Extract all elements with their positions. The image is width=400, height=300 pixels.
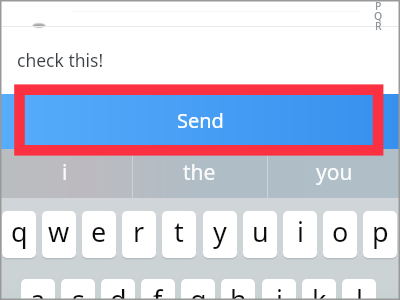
staticText: w	[48, 213, 70, 250]
staticText: a	[30, 281, 46, 300]
button[interactable]: o	[323, 211, 357, 258]
staticText: y	[213, 213, 227, 250]
staticText: t	[174, 213, 184, 250]
button[interactable]: u	[243, 211, 277, 258]
staticText: i	[62, 158, 68, 187]
button[interactable]: h	[221, 279, 255, 300]
button[interactable]: j	[262, 279, 296, 300]
button[interactable]: e	[82, 211, 116, 258]
staticText: f	[153, 281, 163, 300]
button[interactable]: Alphabet index	[371, 0, 386, 31]
staticText: i	[297, 213, 304, 250]
staticText: you	[316, 158, 353, 187]
button[interactable]: w	[42, 211, 76, 258]
staticText: check this!	[17, 48, 104, 72]
staticText: h	[230, 281, 247, 300]
staticText: d	[110, 281, 127, 300]
button[interactable]: y	[203, 211, 237, 258]
staticText: l	[356, 281, 363, 300]
staticText: r	[133, 213, 145, 250]
button[interactable]: r	[122, 211, 156, 258]
button[interactable]: a	[21, 279, 55, 300]
button[interactable]: the	[133, 149, 266, 198]
staticText: p	[372, 213, 389, 250]
button[interactable]: i	[0, 149, 129, 198]
button[interactable]: s	[61, 279, 95, 300]
button[interactable]: q	[2, 211, 36, 258]
staticText: R	[375, 19, 382, 33]
staticText: u	[252, 213, 269, 250]
button[interactable]: check this!	[0, 30, 400, 94]
staticText: e	[91, 213, 107, 250]
button[interactable]: d	[101, 279, 135, 300]
staticText: Send	[177, 107, 224, 134]
staticText: s	[72, 281, 85, 300]
button[interactable]: g	[181, 279, 215, 300]
staticText: q	[11, 213, 28, 250]
button[interactable]: t	[162, 211, 196, 258]
button[interactable]: k	[302, 279, 336, 300]
staticText: P	[375, 0, 382, 13]
button[interactable]: you	[268, 149, 400, 198]
staticText: Q	[374, 9, 383, 23]
staticText: g	[190, 281, 207, 300]
button[interactable]: i	[283, 211, 317, 258]
staticText: the	[183, 158, 216, 187]
button[interactable]: p	[363, 211, 397, 258]
staticText: o	[332, 213, 349, 250]
staticText: k	[312, 281, 327, 300]
button[interactable]: f	[141, 279, 175, 300]
button[interactable]: Send	[0, 94, 400, 149]
button[interactable]: l	[342, 279, 376, 300]
staticText: j	[276, 281, 283, 300]
